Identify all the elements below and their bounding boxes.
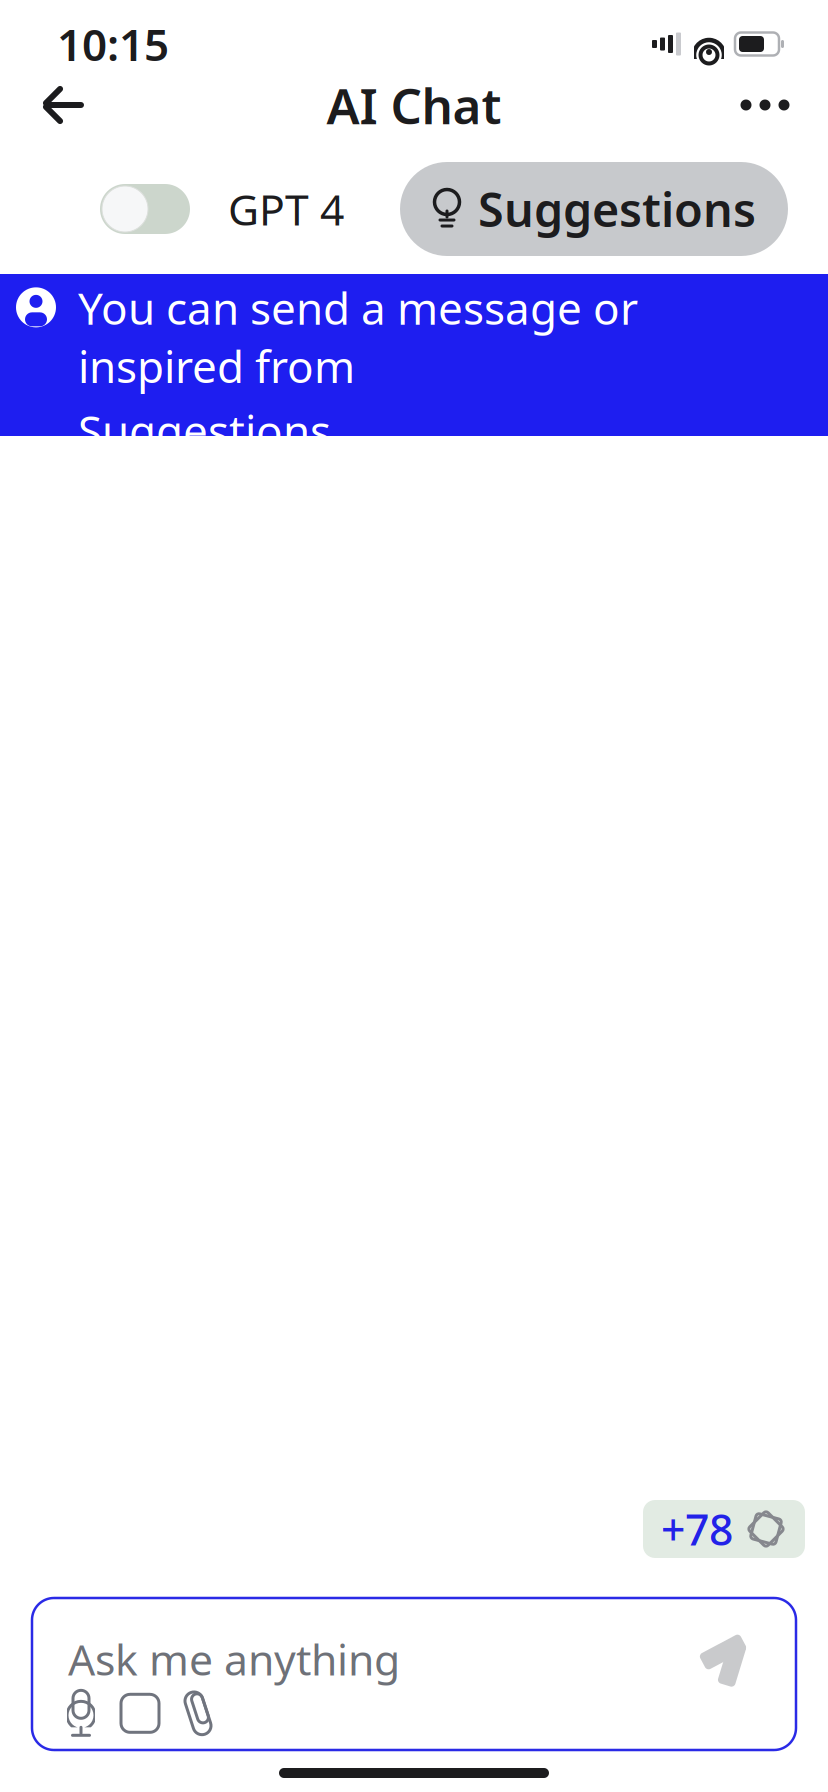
staticText: Ask me anything	[68, 1631, 400, 1687]
staticText: Suggestions	[78, 401, 331, 460]
button[interactable]: Suggestions	[400, 162, 788, 256]
staticText: AI Chat	[326, 72, 501, 138]
button[interactable]: Voice input	[64, 1687, 98, 1739]
staticText: GPT 4	[228, 181, 344, 237]
button[interactable]: Attach file	[182, 1687, 214, 1739]
button[interactable]: Send	[696, 1630, 756, 1690]
staticText: +78	[661, 1501, 733, 1557]
staticText: 10:15	[57, 15, 169, 73]
button[interactable]: Scan	[120, 1687, 160, 1739]
button[interactable]: Toggle GPT 4	[100, 184, 190, 234]
button[interactable]: +78	[643, 1500, 805, 1558]
staticText: Suggestions	[478, 178, 756, 240]
button[interactable]: Back	[30, 75, 94, 135]
staticText: You can send a message or inspired from	[78, 278, 638, 395]
button[interactable]: More options	[732, 75, 798, 135]
